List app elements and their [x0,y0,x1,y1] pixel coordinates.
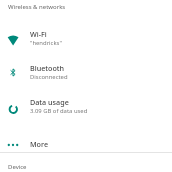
staticText: Device [8,163,27,171]
staticText: Wireless & networks [8,3,66,11]
staticText: Bluetooth [30,63,65,73]
staticText: Data usage [30,97,69,107]
staticText: 3.09 GB of data used [30,107,88,115]
staticText: More [30,139,49,149]
button[interactable]: More [0,128,172,152]
button[interactable]: Data usage [0,90,172,124]
staticText: Disconnected [30,73,68,81]
staticText: "hendricks" [30,39,62,47]
staticText: Wi-Fi [30,29,47,39]
button[interactable]: Wi-Fi [0,22,172,56]
button[interactable]: Bluetooth [0,56,172,90]
